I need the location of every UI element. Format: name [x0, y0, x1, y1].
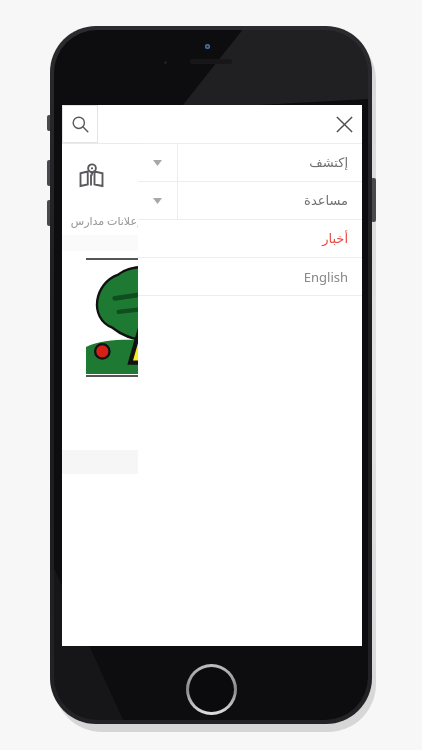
- staticText: إعلانات مدارس: [70, 213, 140, 228]
- button[interactable]: Search: [62, 105, 98, 143]
- button[interactable]: مساعدة: [138, 182, 362, 219]
- button[interactable]: أخبار: [138, 220, 362, 257]
- button[interactable]: Map: [76, 161, 106, 191]
- staticText: أخبار: [322, 231, 348, 246]
- staticText: إكتشف: [309, 155, 348, 170]
- button[interactable]: Close menu: [326, 105, 362, 143]
- staticText: مساعدة: [304, 193, 348, 208]
- button[interactable]: إكتشف: [138, 144, 362, 181]
- button[interactable]: English: [138, 258, 362, 295]
- staticText: English: [303, 268, 348, 286]
